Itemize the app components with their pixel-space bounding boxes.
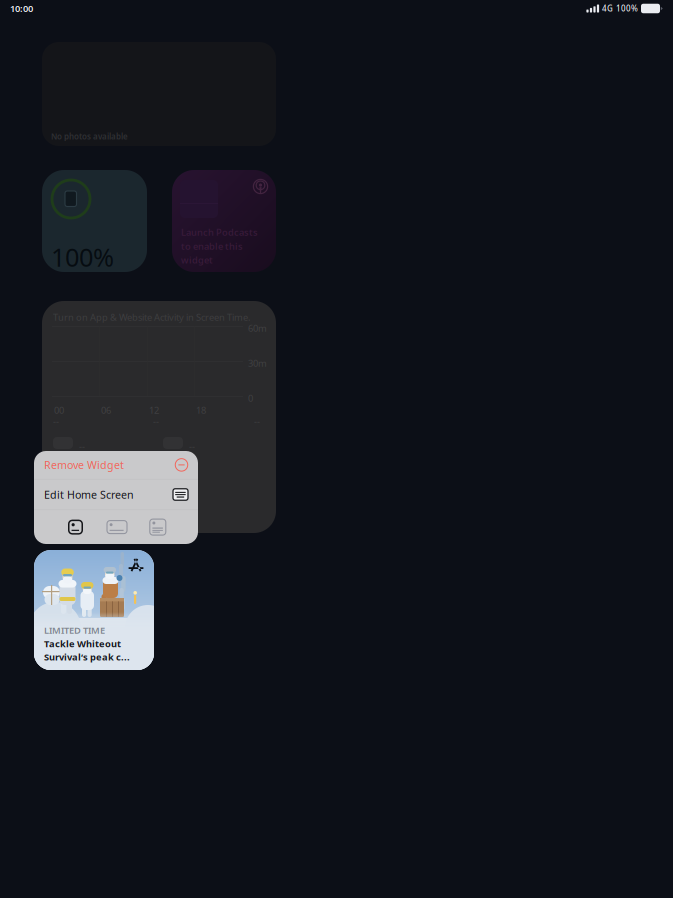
staticText: Tackle Whiteout (44, 637, 121, 650)
button[interactable]: Small widget (58, 510, 92, 544)
button[interactable]: Turn on App & Website Activity in Screen… (42, 301, 276, 533)
button[interactable]: Remove Widget (34, 451, 198, 479)
staticText: -- (79, 467, 85, 479)
staticText: to enable this (181, 240, 243, 252)
staticText: LIMITED TIME (44, 624, 105, 636)
staticText: widget (181, 254, 213, 266)
staticText: -- (79, 440, 85, 452)
staticText: 00 (54, 404, 64, 416)
button[interactable]: Launch Podcasts (172, 170, 276, 272)
staticText: 06 (101, 404, 111, 416)
staticText: Remove Widget (44, 458, 124, 472)
staticText: Launch Podcasts (181, 226, 258, 238)
staticText: 4G (602, 3, 613, 14)
button[interactable]: Medium widget (99, 510, 135, 544)
staticText: 30m (248, 357, 267, 369)
button[interactable]: LIMITED TIME (34, 550, 154, 670)
staticText: 12 (149, 404, 159, 416)
staticText: 18 (196, 404, 206, 416)
staticText: 0 (248, 392, 253, 404)
staticText: -- (189, 440, 195, 452)
button[interactable]: Edit Home Screen (34, 479, 198, 509)
staticText: Edit Home Screen (44, 487, 134, 502)
staticText: Turn on App & Website Activity in Screen… (53, 311, 251, 323)
staticText: 100% (616, 3, 638, 14)
staticText: 60m (248, 322, 267, 334)
button[interactable]: Large widget (141, 510, 175, 544)
staticText: 100% (51, 240, 114, 274)
button[interactable]: 100% (42, 170, 147, 272)
staticText: 10:00 (10, 2, 33, 15)
staticText: -- (79, 494, 85, 506)
staticText: No photos available (51, 131, 128, 142)
staticText: Survival‘s peak c... (44, 651, 130, 663)
